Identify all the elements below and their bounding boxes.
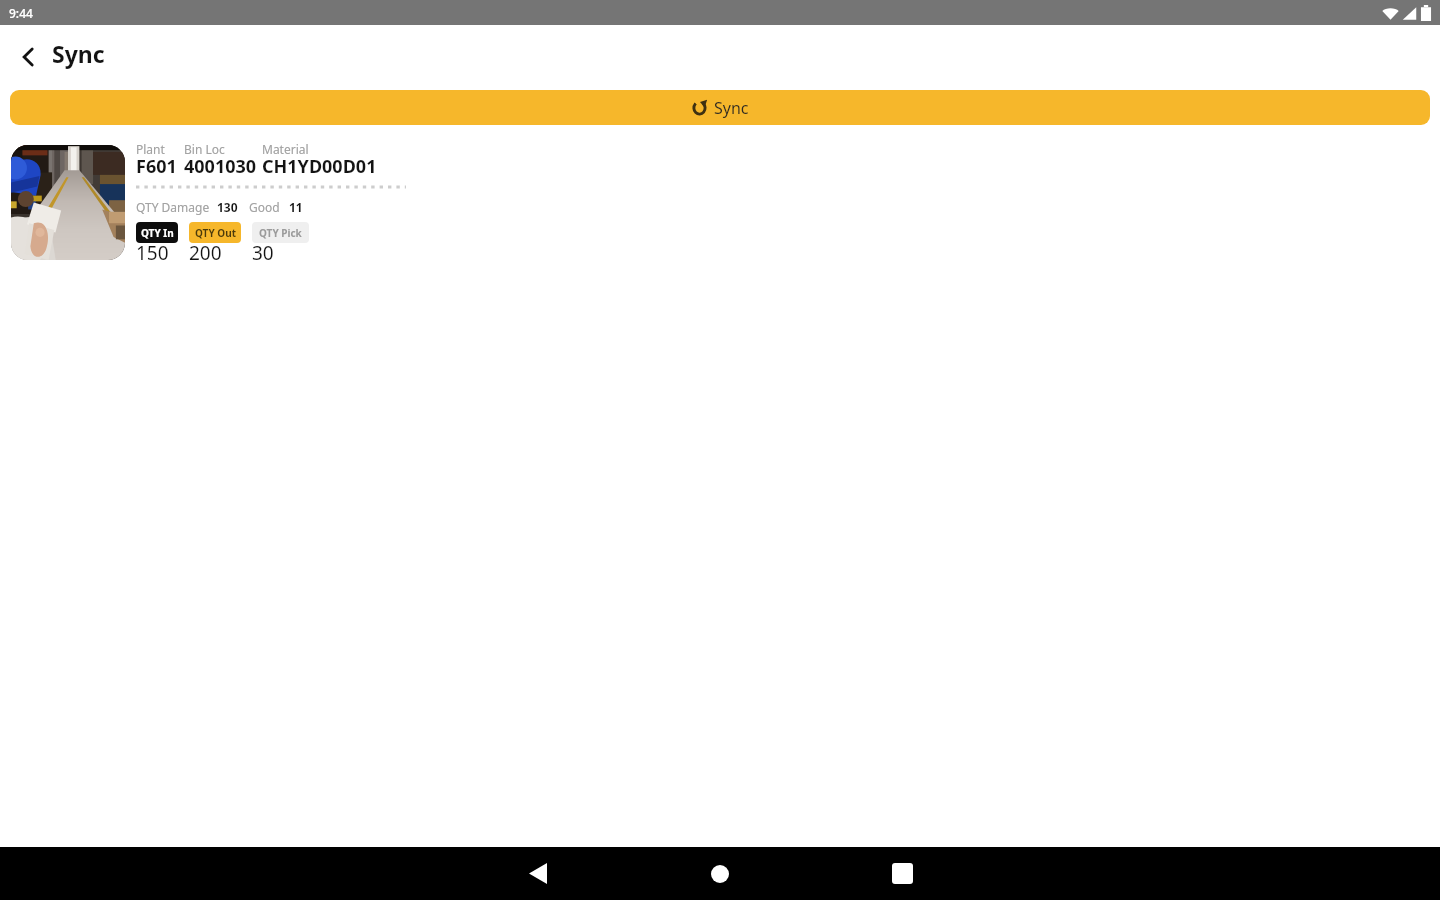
button[interactable]: QTY Pick (252, 222, 309, 243)
button[interactable]: Back (508, 847, 568, 900)
staticText: QTY Pick (259, 226, 302, 240)
staticText: Bin Loc (184, 141, 225, 157)
button[interactable]: QTY Out (189, 222, 241, 243)
staticText: QTY Out (195, 226, 236, 240)
staticText: Plant (136, 141, 165, 157)
staticText: 30 (252, 240, 274, 266)
button[interactable]: Home (690, 847, 750, 900)
staticText: Good (249, 199, 280, 215)
staticText: 200 (189, 240, 222, 266)
button[interactable]: Warehouse item photo (11, 145, 125, 260)
button[interactable]: Back (12, 42, 44, 72)
staticText: QTY In (141, 226, 174, 240)
staticText: Sync (714, 97, 749, 119)
staticText: 130 (217, 199, 238, 215)
staticText: CH1YD00D01 (262, 154, 377, 179)
staticText: F601 (136, 154, 177, 179)
staticText: Sync (52, 38, 105, 69)
staticText: 150 (136, 240, 169, 266)
staticText: QTY Damage (136, 199, 210, 215)
button[interactable]: QTY In (136, 222, 178, 243)
button[interactable]: Recent apps (872, 847, 932, 900)
button[interactable]: Warehouse item photo (0, 130, 1440, 270)
staticText: Material (262, 141, 309, 157)
staticText: 11 (289, 199, 303, 215)
button[interactable]: Sync (10, 90, 1430, 125)
staticText: 4001030 (184, 154, 257, 179)
staticText: 9:44 (9, 5, 33, 21)
